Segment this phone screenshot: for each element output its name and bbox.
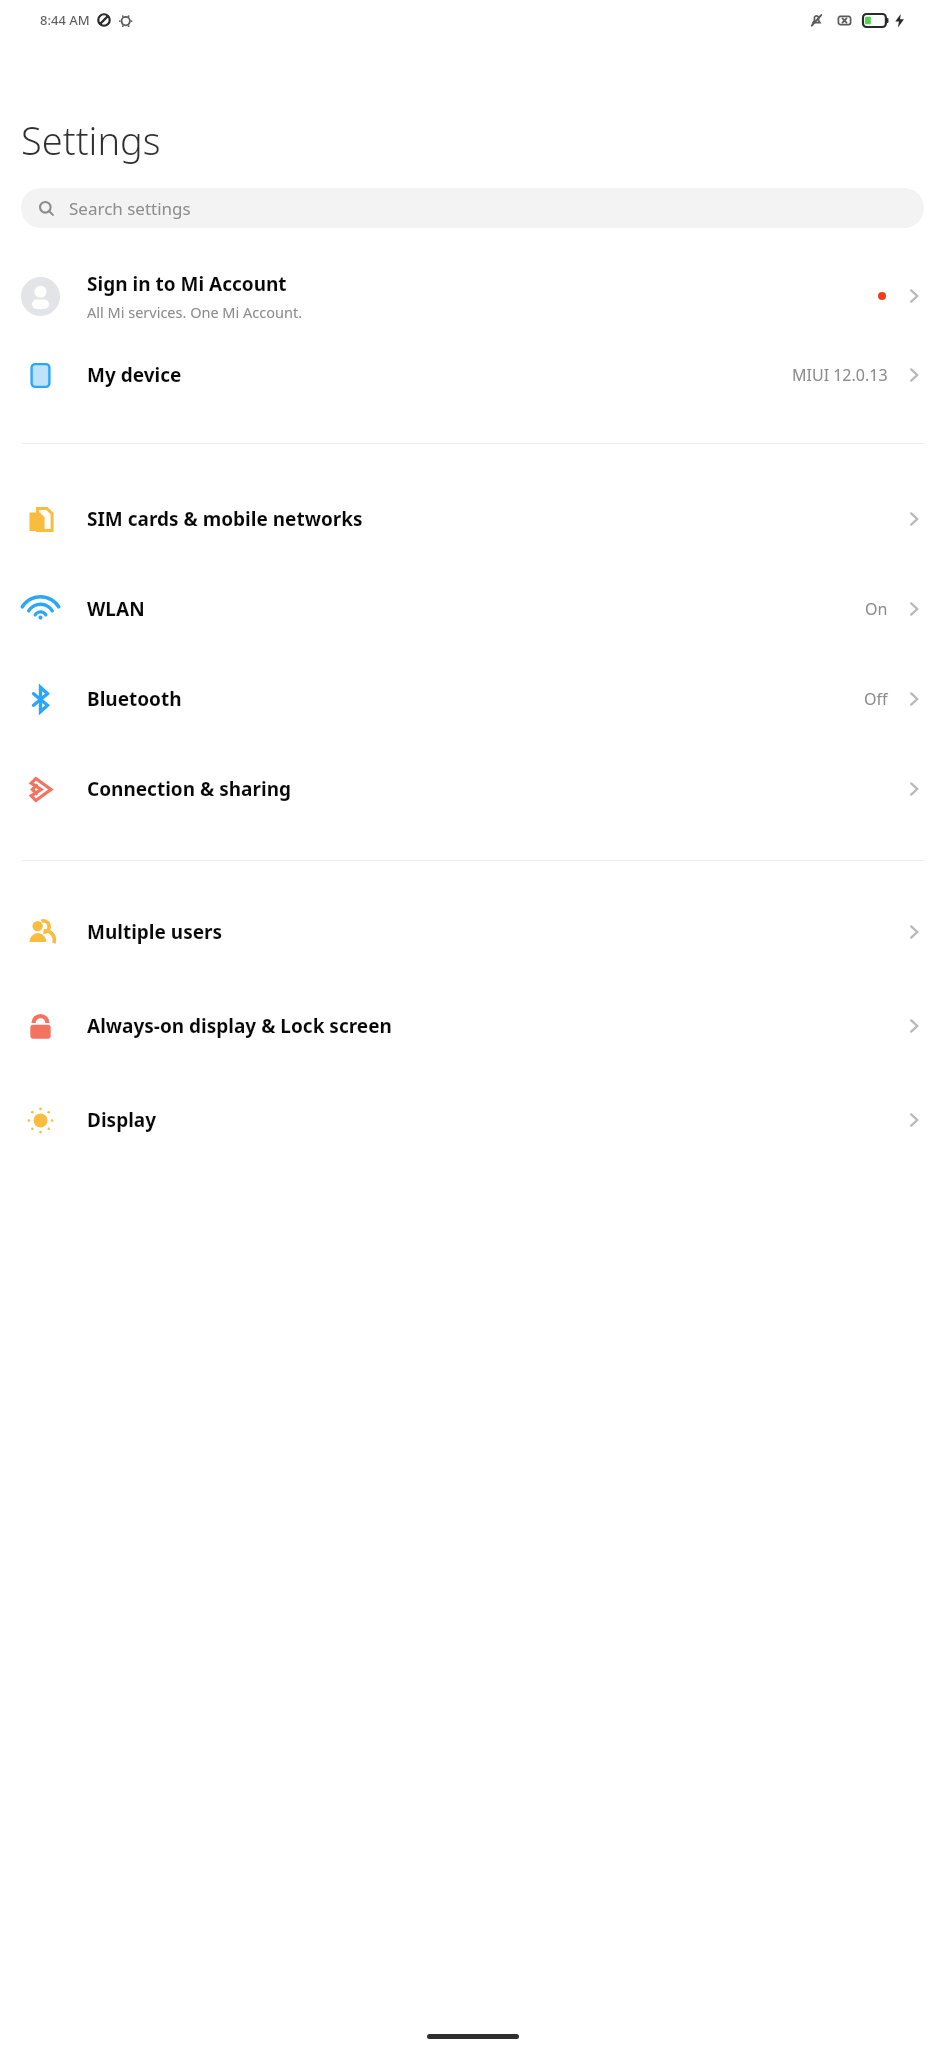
staticText: Settings <box>21 114 161 166</box>
staticText: Connection & sharing <box>87 776 904 802</box>
staticText: Display <box>87 1107 904 1133</box>
button[interactable]: Sign in to Mi Account <box>0 254 945 338</box>
staticText: Multiple users <box>87 919 904 945</box>
button[interactable]: Bluetooth <box>0 654 945 744</box>
staticText: Sign in to Mi Account <box>87 271 287 297</box>
button[interactable]: Connection & sharing <box>0 744 945 834</box>
staticText: MIUI 12.0.13 <box>792 364 888 386</box>
button[interactable]: Multiple users <box>0 887 945 977</box>
button[interactable]: Display <box>0 1075 945 1165</box>
button[interactable]: Always-on display & Lock screen <box>0 977 945 1075</box>
staticText: Bluetooth <box>87 686 864 712</box>
staticText: 8:44 AM <box>40 11 90 29</box>
staticText: SIM cards & mobile networks <box>87 506 904 532</box>
button[interactable]: SIM cards & mobile networks <box>0 474 945 564</box>
button[interactable]: WLAN <box>0 564 945 654</box>
button[interactable]: My device <box>0 338 945 412</box>
staticText: My device <box>87 362 792 388</box>
staticText: All Mi services. One Mi Account. <box>87 302 303 322</box>
staticText: WLAN <box>87 596 865 622</box>
staticText: Always-on display & Lock screen <box>87 1013 904 1039</box>
staticText: Off <box>864 688 888 710</box>
staticText: On <box>865 598 888 620</box>
staticText: Search settings <box>69 197 191 220</box>
button[interactable]: Search settings <box>21 188 924 228</box>
